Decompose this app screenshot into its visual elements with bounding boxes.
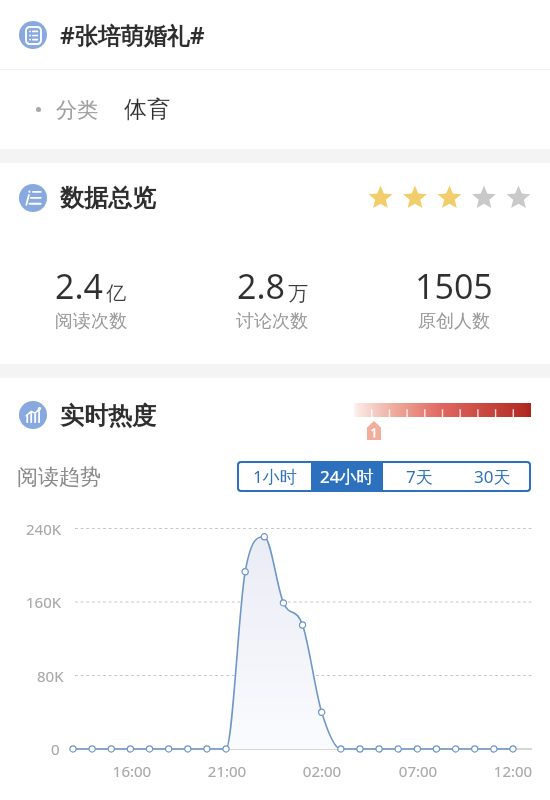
staticText: 万 [288,281,308,306]
staticText: 体育 [124,95,170,124]
staticText: 原创人数 [418,310,490,333]
staticText: 1505 [415,263,493,309]
staticText: 30天 [474,465,511,488]
button[interactable]: 30天 [456,463,529,490]
staticText: 160K [26,592,62,612]
staticText: 240K [26,519,62,539]
staticText: 12:00 [493,761,533,781]
staticText: 0 [51,739,60,759]
staticText: 21:00 [207,761,247,781]
button[interactable]: 7天 [383,463,456,490]
staticText: 16:00 [112,761,152,781]
staticText: 1小时 [253,465,297,488]
staticText: 数据总览 [60,183,156,213]
staticText: 讨论次数 [236,310,308,333]
staticText: 80K [37,666,64,686]
button[interactable]: 1小时 [239,463,311,490]
button[interactable]: 实时热度 [19,400,156,430]
button[interactable]: #张培萌婚礼# [0,0,550,69]
staticText: 02:00 [302,761,342,781]
staticText: #张培萌婚礼# [60,19,205,50]
staticText: 24小时 [320,465,374,488]
staticText: 阅读次数 [55,310,127,333]
staticText: 2.8 [237,263,286,309]
staticText: 07:00 [398,761,438,781]
staticText: 2.4 [55,263,104,309]
button[interactable]: 24小时 [311,463,383,490]
staticText: 7天 [406,465,433,488]
staticText: 亿 [106,281,126,306]
staticText: 分类 [56,97,98,123]
staticText: 阅读趋势 [17,464,101,490]
button[interactable]: 分类 [0,70,550,149]
staticText: 实时热度 [60,401,156,431]
button[interactable]: 数据总览 [0,163,550,233]
